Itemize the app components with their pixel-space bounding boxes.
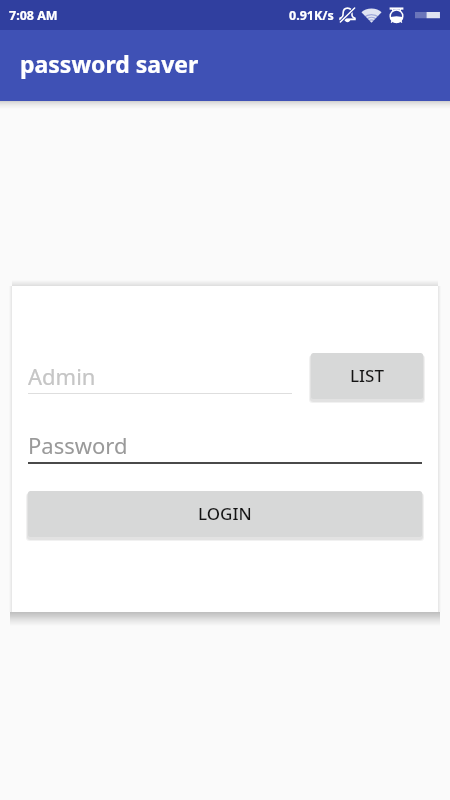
other: Wi-Fi signal <box>361 7 382 23</box>
button[interactable]: LOGIN <box>28 491 422 537</box>
staticText: LOGIN <box>198 502 252 525</box>
other: Alarm set <box>389 6 404 23</box>
staticText: password saver <box>20 48 199 79</box>
other: Battery <box>415 9 441 21</box>
button[interactable]: Password <box>28 435 422 464</box>
staticText: 7:08 AM <box>9 7 58 24</box>
staticText: Password <box>28 430 128 459</box>
other: Notifications muted <box>339 7 356 23</box>
staticText: Admin <box>28 361 96 389</box>
staticText: LIST <box>350 364 384 387</box>
button[interactable]: Admin <box>28 366 292 394</box>
button[interactable]: LIST <box>311 353 423 399</box>
staticText: 0.91K/s <box>289 7 334 24</box>
